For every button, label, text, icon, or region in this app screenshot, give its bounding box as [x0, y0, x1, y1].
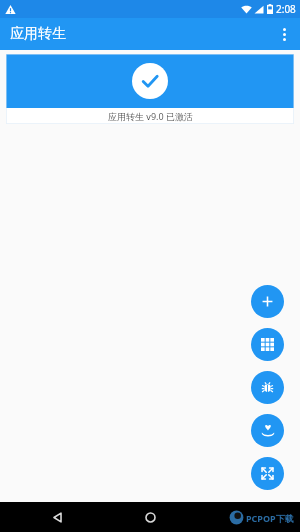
staticText: 2:08: [276, 2, 296, 16]
button[interactable]: Donate: [251, 414, 284, 447]
button[interactable]: Home: [137, 504, 163, 530]
button[interactable]: 应用转生 v9.0 已激活: [6, 54, 294, 124]
button[interactable]: Debug: [251, 371, 284, 404]
button[interactable]: Add: [251, 285, 284, 318]
button[interactable]: More options: [268, 18, 300, 50]
button[interactable]: Fullscreen: [251, 457, 284, 490]
button[interactable]: Apps: [251, 328, 284, 361]
staticText: 应用转生 v9.0 已激活: [108, 110, 193, 122]
staticText: PCPOP下载: [246, 512, 294, 524]
button[interactable]: Back: [44, 504, 70, 530]
staticText: 应用转生: [10, 25, 66, 43]
